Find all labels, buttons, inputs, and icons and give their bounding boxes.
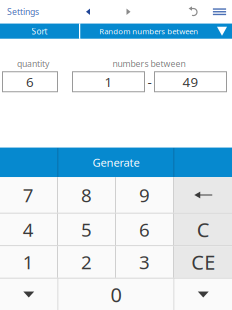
staticText: Generate — [92, 155, 139, 170]
staticText: Settings — [7, 6, 39, 18]
button[interactable]: 1 — [72, 72, 144, 92]
button[interactable]: Random numbers between — [80, 24, 232, 39]
staticText: - — [147, 73, 151, 91]
staticText: 9 — [139, 182, 150, 208]
button[interactable]: 6 — [2, 72, 57, 92]
button[interactable]: 0 — [58, 279, 173, 310]
button[interactable]: 6 — [116, 214, 173, 245]
staticText: 5 — [81, 217, 92, 242]
button[interactable]: Step down right — [174, 279, 232, 310]
staticText: 7 — [23, 182, 34, 208]
button[interactable]: 2 — [58, 246, 115, 278]
button[interactable]: 9 — [116, 177, 173, 213]
button[interactable]: Settings — [0, 0, 45, 24]
button[interactable]: 49 — [154, 72, 226, 92]
button[interactable]: Sort — [0, 24, 79, 39]
staticText: 49 — [182, 73, 198, 91]
button[interactable]: 8 — [58, 177, 115, 213]
staticText: 1 — [104, 73, 112, 91]
button[interactable]: Left action — [0, 148, 57, 177]
button[interactable]: 7 — [0, 177, 57, 213]
button[interactable]: Step down — [0, 279, 57, 310]
staticText: 1 — [23, 249, 34, 275]
staticText: 6 — [139, 217, 150, 242]
staticText: Random numbers between — [99, 26, 198, 36]
button[interactable]: Menu — [210, 0, 229, 24]
button[interactable]: Back — [78, 0, 98, 24]
staticText: 3 — [139, 249, 150, 275]
staticText: 4 — [23, 217, 34, 242]
button[interactable]: 4 — [0, 214, 57, 245]
staticText: 6 — [26, 73, 34, 91]
button[interactable]: CE — [174, 246, 232, 278]
staticText: numbers between — [112, 58, 185, 70]
staticText: 8 — [81, 182, 92, 208]
staticText: 2 — [81, 249, 92, 275]
button[interactable]: 3 — [116, 246, 173, 278]
button[interactable]: 5 — [58, 214, 115, 245]
staticText: Sort — [31, 26, 47, 37]
button[interactable]: Forward — [118, 0, 138, 24]
button[interactable]: Generate — [58, 148, 173, 177]
button[interactable]: Backspace — [174, 177, 232, 213]
button[interactable]: C — [174, 214, 232, 245]
button[interactable]: 1 — [0, 246, 57, 278]
staticText: CE — [191, 248, 215, 276]
staticText: quantity — [17, 58, 49, 70]
button[interactable]: Undo — [184, 0, 202, 24]
staticText: 0 — [110, 281, 121, 308]
staticText: C — [197, 216, 210, 243]
